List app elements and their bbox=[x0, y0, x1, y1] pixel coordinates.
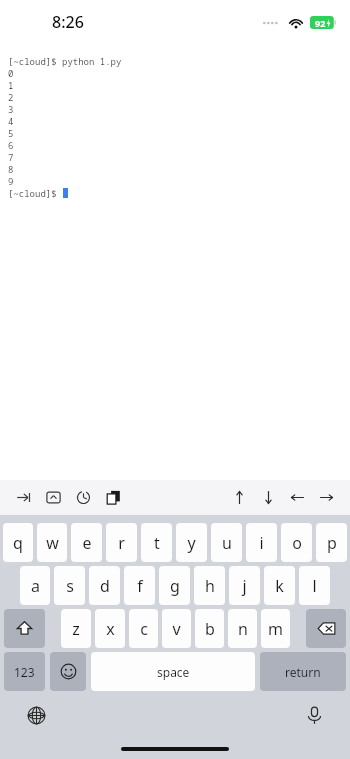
button[interactable]: j bbox=[229, 566, 260, 605]
button[interactable]: b bbox=[195, 609, 224, 648]
button[interactable]: c bbox=[129, 609, 158, 648]
staticText: z bbox=[72, 618, 80, 640]
button[interactable]: Down bbox=[259, 488, 278, 507]
staticText: 9 bbox=[8, 175, 14, 187]
button[interactable]: g bbox=[159, 566, 190, 605]
button[interactable]: Paste bbox=[104, 488, 123, 507]
button[interactable]: space bbox=[91, 652, 255, 691]
staticText: e bbox=[82, 532, 92, 554]
button[interactable]: h bbox=[194, 566, 225, 605]
staticText: 2 bbox=[8, 91, 14, 103]
button[interactable]: Dictate bbox=[300, 701, 328, 729]
button[interactable]: d bbox=[89, 566, 120, 605]
staticText: b bbox=[205, 618, 215, 640]
button[interactable]: n bbox=[228, 609, 257, 648]
staticText: 8:26 bbox=[52, 11, 84, 33]
staticText: w bbox=[46, 532, 59, 554]
button[interactable]: i bbox=[246, 523, 277, 562]
button[interactable]: k bbox=[264, 566, 295, 605]
button[interactable]: t bbox=[141, 523, 172, 562]
button[interactable]: 123 bbox=[4, 652, 45, 691]
staticText: q bbox=[13, 532, 23, 554]
staticText: m bbox=[268, 618, 283, 640]
button[interactable]: History bbox=[74, 488, 93, 507]
button[interactable]: r bbox=[106, 523, 137, 562]
button[interactable]: Control bbox=[44, 488, 63, 507]
staticText: n bbox=[238, 618, 248, 640]
staticText: j bbox=[242, 575, 247, 597]
staticText: 5 bbox=[8, 127, 14, 139]
staticText: g bbox=[170, 575, 180, 597]
staticText: 0 bbox=[8, 67, 14, 79]
staticText: h bbox=[205, 575, 215, 597]
button[interactable]: Right bbox=[317, 488, 336, 507]
staticText: 3 bbox=[8, 103, 14, 115]
button[interactable]: Left bbox=[288, 488, 307, 507]
button[interactable]: s bbox=[54, 566, 85, 605]
staticText: i bbox=[259, 532, 264, 554]
staticText: 7 bbox=[8, 151, 14, 163]
staticText: s bbox=[66, 575, 74, 597]
staticText: k bbox=[275, 575, 284, 597]
button[interactable]: Up bbox=[230, 488, 249, 507]
staticText: v bbox=[172, 618, 181, 640]
staticText: space bbox=[157, 664, 190, 680]
staticText: f bbox=[137, 575, 143, 597]
staticText: return bbox=[285, 664, 321, 680]
button[interactable]: Shift bbox=[4, 609, 45, 648]
staticText: l bbox=[312, 575, 317, 597]
button[interactable]: x bbox=[95, 609, 125, 648]
button[interactable]: a bbox=[20, 566, 50, 605]
staticText: 92 bbox=[315, 17, 326, 29]
staticText: [~cloud]$ bbox=[8, 187, 63, 199]
staticText: r bbox=[118, 532, 125, 554]
button[interactable]: return bbox=[260, 652, 346, 691]
button[interactable]: l bbox=[299, 566, 330, 605]
staticText: p bbox=[327, 532, 337, 554]
staticText: t bbox=[154, 532, 160, 554]
staticText: c bbox=[140, 618, 148, 640]
button[interactable]: Tab bbox=[14, 488, 33, 507]
staticText: 8 bbox=[8, 163, 14, 175]
button[interactable]: u bbox=[211, 523, 242, 562]
button[interactable]: Switch keyboard bbox=[22, 701, 50, 729]
button[interactable]: o bbox=[281, 523, 312, 562]
staticText: o bbox=[292, 532, 302, 554]
button[interactable]: f bbox=[124, 566, 155, 605]
button[interactable]: w bbox=[37, 523, 67, 562]
staticText: a bbox=[31, 575, 40, 597]
staticText: u bbox=[222, 532, 232, 554]
button[interactable]: Emoji bbox=[50, 652, 86, 691]
staticText: d bbox=[100, 575, 110, 597]
button[interactable]: Backspace bbox=[306, 609, 346, 648]
staticText: x bbox=[106, 618, 115, 640]
button[interactable]: y bbox=[176, 523, 207, 562]
staticText: y bbox=[187, 532, 196, 554]
staticText: 1 bbox=[8, 79, 14, 91]
button[interactable]: q bbox=[3, 523, 33, 562]
staticText: 4 bbox=[8, 115, 14, 127]
button[interactable]: e bbox=[71, 523, 102, 562]
staticText: 6 bbox=[8, 139, 14, 151]
button[interactable]: v bbox=[162, 609, 191, 648]
staticText: [~cloud]$ python 1.py bbox=[8, 55, 122, 67]
button[interactable]: m bbox=[261, 609, 290, 648]
button[interactable]: z bbox=[61, 609, 91, 648]
button[interactable]: p bbox=[316, 523, 347, 562]
staticText: 123 bbox=[14, 664, 35, 680]
